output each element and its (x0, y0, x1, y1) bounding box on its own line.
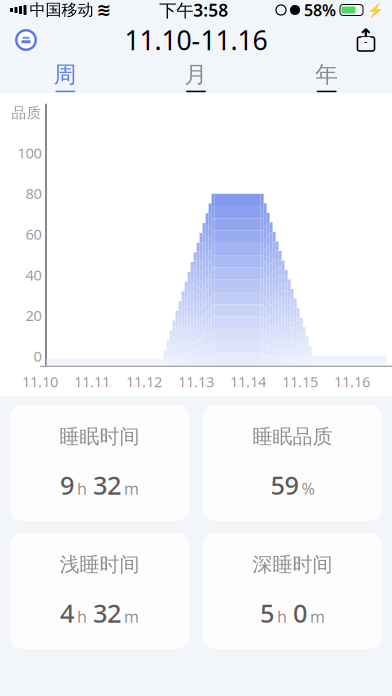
button[interactable]: 月 (131, 60, 261, 93)
button[interactable]: 深睡时间 (203, 533, 382, 649)
staticText: m (310, 606, 325, 627)
staticText: ⚡ (367, 2, 384, 18)
staticText: 下午3:58 (159, 0, 228, 21)
staticText: m (124, 606, 139, 627)
staticText: 4 (60, 596, 74, 630)
staticText: ≋ (96, 0, 111, 20)
button[interactable]: 年 (261, 60, 392, 93)
staticText: 9 (60, 468, 74, 502)
button[interactable]: 周 (0, 60, 131, 93)
staticText: 11.11 (74, 372, 110, 391)
staticText: m (124, 478, 139, 499)
staticText: 80 (25, 184, 41, 203)
staticText: 睡眠时间 (59, 424, 139, 449)
button[interactable]: 睡眠品质 (203, 405, 382, 521)
staticText: 11.13 (178, 372, 214, 391)
staticText: h (77, 478, 87, 499)
staticText: 中国移动 (29, 0, 93, 20)
staticText: 11.12 (126, 372, 162, 391)
staticText: h (77, 606, 87, 627)
staticText: 60 (25, 224, 41, 244)
staticText: 0 (293, 596, 307, 630)
staticText: 品质 (11, 104, 41, 122)
staticText: 5 (260, 596, 274, 630)
staticText: 0 (33, 346, 41, 366)
button[interactable]: 睡眠时间 (10, 405, 189, 521)
staticText: 100 (17, 143, 41, 162)
staticText: % (301, 478, 314, 499)
staticText: 浅睡时间 (59, 552, 139, 577)
staticText: 睡眠品质 (252, 424, 332, 449)
staticText: 11.15 (282, 372, 318, 391)
staticText: 59 (270, 468, 298, 502)
staticText: 周 (54, 61, 77, 89)
staticText: h (277, 606, 287, 627)
staticText: 32 (93, 596, 121, 630)
staticText: 20 (25, 306, 41, 325)
button[interactable]: Profile (4, 20, 48, 60)
button[interactable]: 浅睡时间 (10, 533, 189, 649)
staticText: 11.10-11.16 (124, 22, 267, 58)
staticText: 11.16 (334, 372, 370, 391)
staticText: 11.14 (230, 372, 266, 391)
staticText: 年 (315, 61, 338, 89)
staticText: 40 (25, 265, 41, 284)
staticText: 11.10 (22, 372, 58, 391)
button[interactable]: Share (344, 20, 388, 60)
staticText: 32 (93, 468, 121, 502)
staticText: ↑ (357, 25, 374, 47)
staticText: 月 (184, 61, 207, 89)
staticText: 58% (304, 0, 336, 21)
staticText: 深睡时间 (252, 552, 332, 577)
